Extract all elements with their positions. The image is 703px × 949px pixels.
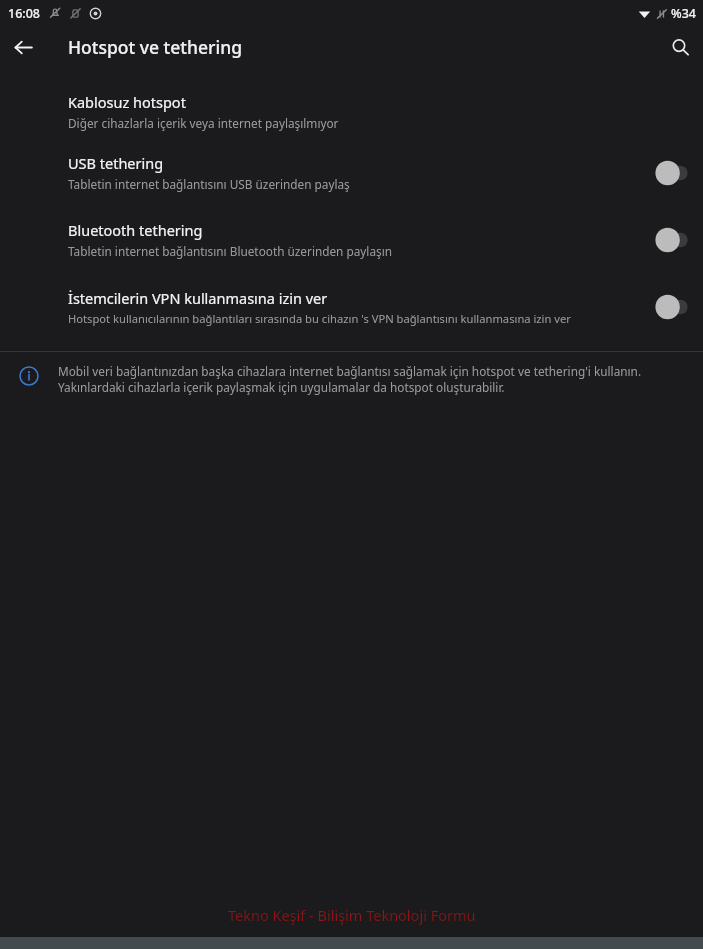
button[interactable]: Search [661,28,699,66]
staticText: Hotspot ve tethering [68,35,243,59]
staticText: Diğer cihazlarla içerik veya internet pa… [68,115,339,131]
staticText: Mobil veri bağlantınızdan başka cihazlar… [58,363,681,395]
staticText: %34 [671,5,696,22]
button[interactable]: Back [5,29,41,65]
button[interactable]: Kablosuz hotspot [0,83,703,139]
staticText: USB tethering [68,153,164,173]
staticText: Tekno Keşif - Bilişim Teknoloji Formu [228,905,476,925]
button[interactable]: İstemcilerin VPN kullanmasına izin ver [0,273,703,340]
button[interactable] [641,220,703,260]
button[interactable] [641,153,703,193]
button[interactable] [641,287,703,327]
staticText: 16:08 [8,5,41,22]
staticText: Tabletin internet bağlantısını USB üzeri… [68,176,350,192]
staticText: Hotspot kullanıcılarının bağlantıları sı… [68,311,571,326]
staticText: Kablosuz hotspot [68,92,186,112]
staticText: Tabletin internet bağlantısını Bluetooth… [68,243,393,259]
staticText: Bluetooth tethering [68,220,203,240]
button[interactable]: Bluetooth tethering [0,206,703,273]
button[interactable]: USB tethering [0,139,703,206]
staticText: İstemcilerin VPN kullanmasına izin ver [68,288,328,308]
